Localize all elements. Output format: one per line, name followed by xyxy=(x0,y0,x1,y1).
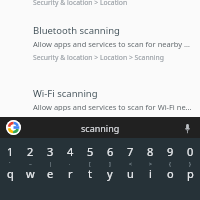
button[interactable]: ] xyxy=(100,160,120,182)
button[interactable]: Google xyxy=(0,117,200,138)
staticText: 9 xyxy=(167,144,174,159)
button[interactable]: Voice search xyxy=(179,120,195,136)
staticText: ~ xyxy=(29,161,32,168)
staticText: w xyxy=(26,166,35,181)
button[interactable]: 6 xyxy=(100,142,120,160)
staticText: q xyxy=(7,166,14,181)
staticText: o xyxy=(167,166,174,181)
staticText: [ xyxy=(89,161,91,168)
staticText: 1 xyxy=(7,144,14,159)
staticText: 5 xyxy=(87,144,94,159)
staticText: Wi-Fi scanning xyxy=(33,87,98,100)
staticText: Bluetooth scanning xyxy=(33,24,120,37)
button[interactable]: Wi-Fi scanning xyxy=(0,81,200,117)
staticText: scanning xyxy=(81,122,120,134)
staticText: · xyxy=(69,161,71,168)
button[interactable]: Google xyxy=(6,120,21,135)
button[interactable]: · xyxy=(60,160,80,182)
staticText: 0 xyxy=(187,144,194,159)
staticText: 7 xyxy=(127,144,134,159)
staticText: Security & location > Location > Scannin… xyxy=(33,53,164,62)
staticText: Security & location > Location xyxy=(33,0,128,7)
button[interactable]: } xyxy=(180,160,200,182)
staticText: r xyxy=(68,166,73,181)
button[interactable]: ` xyxy=(0,160,20,182)
button[interactable]: { xyxy=(160,160,180,182)
staticText: 4 xyxy=(67,144,74,159)
button[interactable]: ~ xyxy=(20,160,40,182)
staticText: ] xyxy=(109,161,111,168)
staticText: < xyxy=(129,161,132,168)
button[interactable]: 3 xyxy=(40,142,60,160)
staticText: Allow apps and services to scan for near… xyxy=(33,39,194,49)
button[interactable]: 9 xyxy=(160,142,180,160)
staticText: 3 xyxy=(47,144,54,159)
staticText: > xyxy=(149,161,152,168)
button[interactable]: Bluetooth scanning xyxy=(0,18,200,68)
button[interactable]: 4 xyxy=(60,142,80,160)
button[interactable]: 0 xyxy=(180,142,200,160)
button[interactable]: 1 xyxy=(0,142,20,160)
button[interactable]: 5 xyxy=(80,142,100,160)
staticText: Allow apps and services to scan for Wi-F… xyxy=(33,102,194,111)
button[interactable]: > xyxy=(140,160,160,182)
staticText: ` xyxy=(9,161,11,168)
button[interactable]: < xyxy=(120,160,140,182)
staticText: i xyxy=(149,166,152,181)
button[interactable]: Security & location > Location xyxy=(0,0,200,9)
staticText: { xyxy=(169,161,171,168)
staticText: y xyxy=(107,166,113,181)
button[interactable]: 7 xyxy=(120,142,140,160)
staticText: 8 xyxy=(147,144,154,159)
staticText: e xyxy=(47,166,54,181)
button[interactable]: [ xyxy=(80,160,100,182)
button[interactable]: | xyxy=(40,160,60,182)
button[interactable]: 8 xyxy=(140,142,160,160)
staticText: | xyxy=(49,161,52,168)
staticText: t xyxy=(88,166,92,181)
staticText: u xyxy=(127,166,134,181)
button[interactable]: 2 xyxy=(20,142,40,160)
staticText: } xyxy=(189,161,191,168)
staticText: 2 xyxy=(27,144,34,159)
staticText: p xyxy=(187,166,194,181)
staticText: 6 xyxy=(107,144,114,159)
